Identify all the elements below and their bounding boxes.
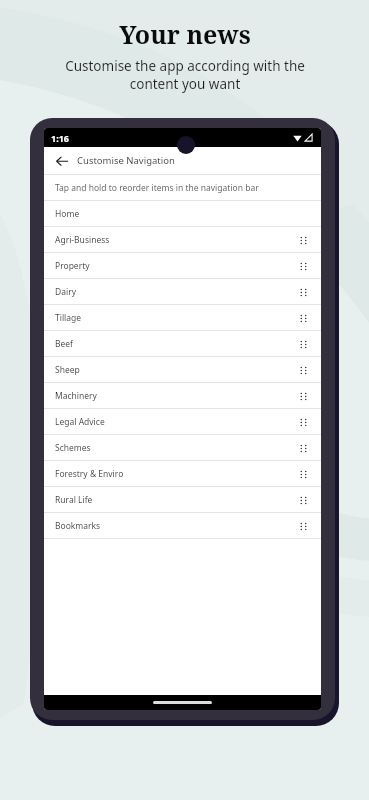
staticText: Rural Life (55, 494, 296, 506)
staticText: Legal Advice (55, 416, 296, 428)
staticText: Home (55, 208, 310, 220)
button[interactable]: Home (44, 201, 321, 226)
staticText: Schemes (55, 442, 296, 454)
button[interactable]: Dairy (44, 279, 321, 304)
staticText: Tap and hold to reorder items in the nav… (55, 182, 259, 194)
button[interactable]: Reorder Property (296, 259, 310, 273)
staticText: Forestry & Enviro (55, 468, 296, 480)
button[interactable]: Schemes (44, 435, 321, 460)
button[interactable]: Reorder Sheep (296, 363, 310, 377)
staticText: Bookmarks (55, 520, 296, 532)
staticText: Tillage (55, 312, 296, 324)
staticText: Agri-Business (55, 234, 296, 246)
button[interactable]: Reorder Bookmarks (296, 519, 310, 533)
button[interactable]: Back (53, 152, 71, 170)
button[interactable]: Reorder Forestry & Enviro (296, 467, 310, 481)
button[interactable]: Reorder Machinery (296, 389, 310, 403)
button[interactable]: Reorder Legal Advice (296, 415, 310, 429)
button[interactable]: Sheep (44, 357, 321, 382)
button[interactable]: Reorder Beef (296, 337, 310, 351)
staticText: Property (55, 260, 296, 272)
button[interactable]: Beef (44, 331, 321, 356)
button[interactable]: Machinery (44, 383, 321, 408)
staticText: Sheep (55, 364, 296, 376)
button[interactable]: Reorder Agri-Business (296, 233, 310, 247)
button[interactable]: Property (44, 253, 321, 278)
staticText: Beef (55, 338, 296, 350)
button[interactable]: Agri-Business (44, 227, 321, 252)
staticText: Customise the app according with the con… (65, 57, 305, 93)
button[interactable]: Reorder Rural Life (296, 493, 310, 507)
button[interactable]: Forestry & Enviro (44, 461, 321, 486)
staticText: Dairy (55, 286, 296, 298)
button[interactable]: Tillage (44, 305, 321, 330)
button[interactable]: Reorder Dairy (296, 285, 310, 299)
staticText: Customise Navigation (77, 154, 175, 167)
button[interactable]: Bookmarks (44, 513, 321, 538)
staticText: Machinery (55, 390, 296, 402)
button[interactable]: Rural Life (44, 487, 321, 512)
button[interactable]: Legal Advice (44, 409, 321, 434)
staticText: 1:16 (51, 132, 69, 144)
button[interactable]: Reorder Tillage (296, 311, 310, 325)
staticText: Your news (119, 17, 251, 51)
button[interactable]: Reorder Schemes (296, 441, 310, 455)
